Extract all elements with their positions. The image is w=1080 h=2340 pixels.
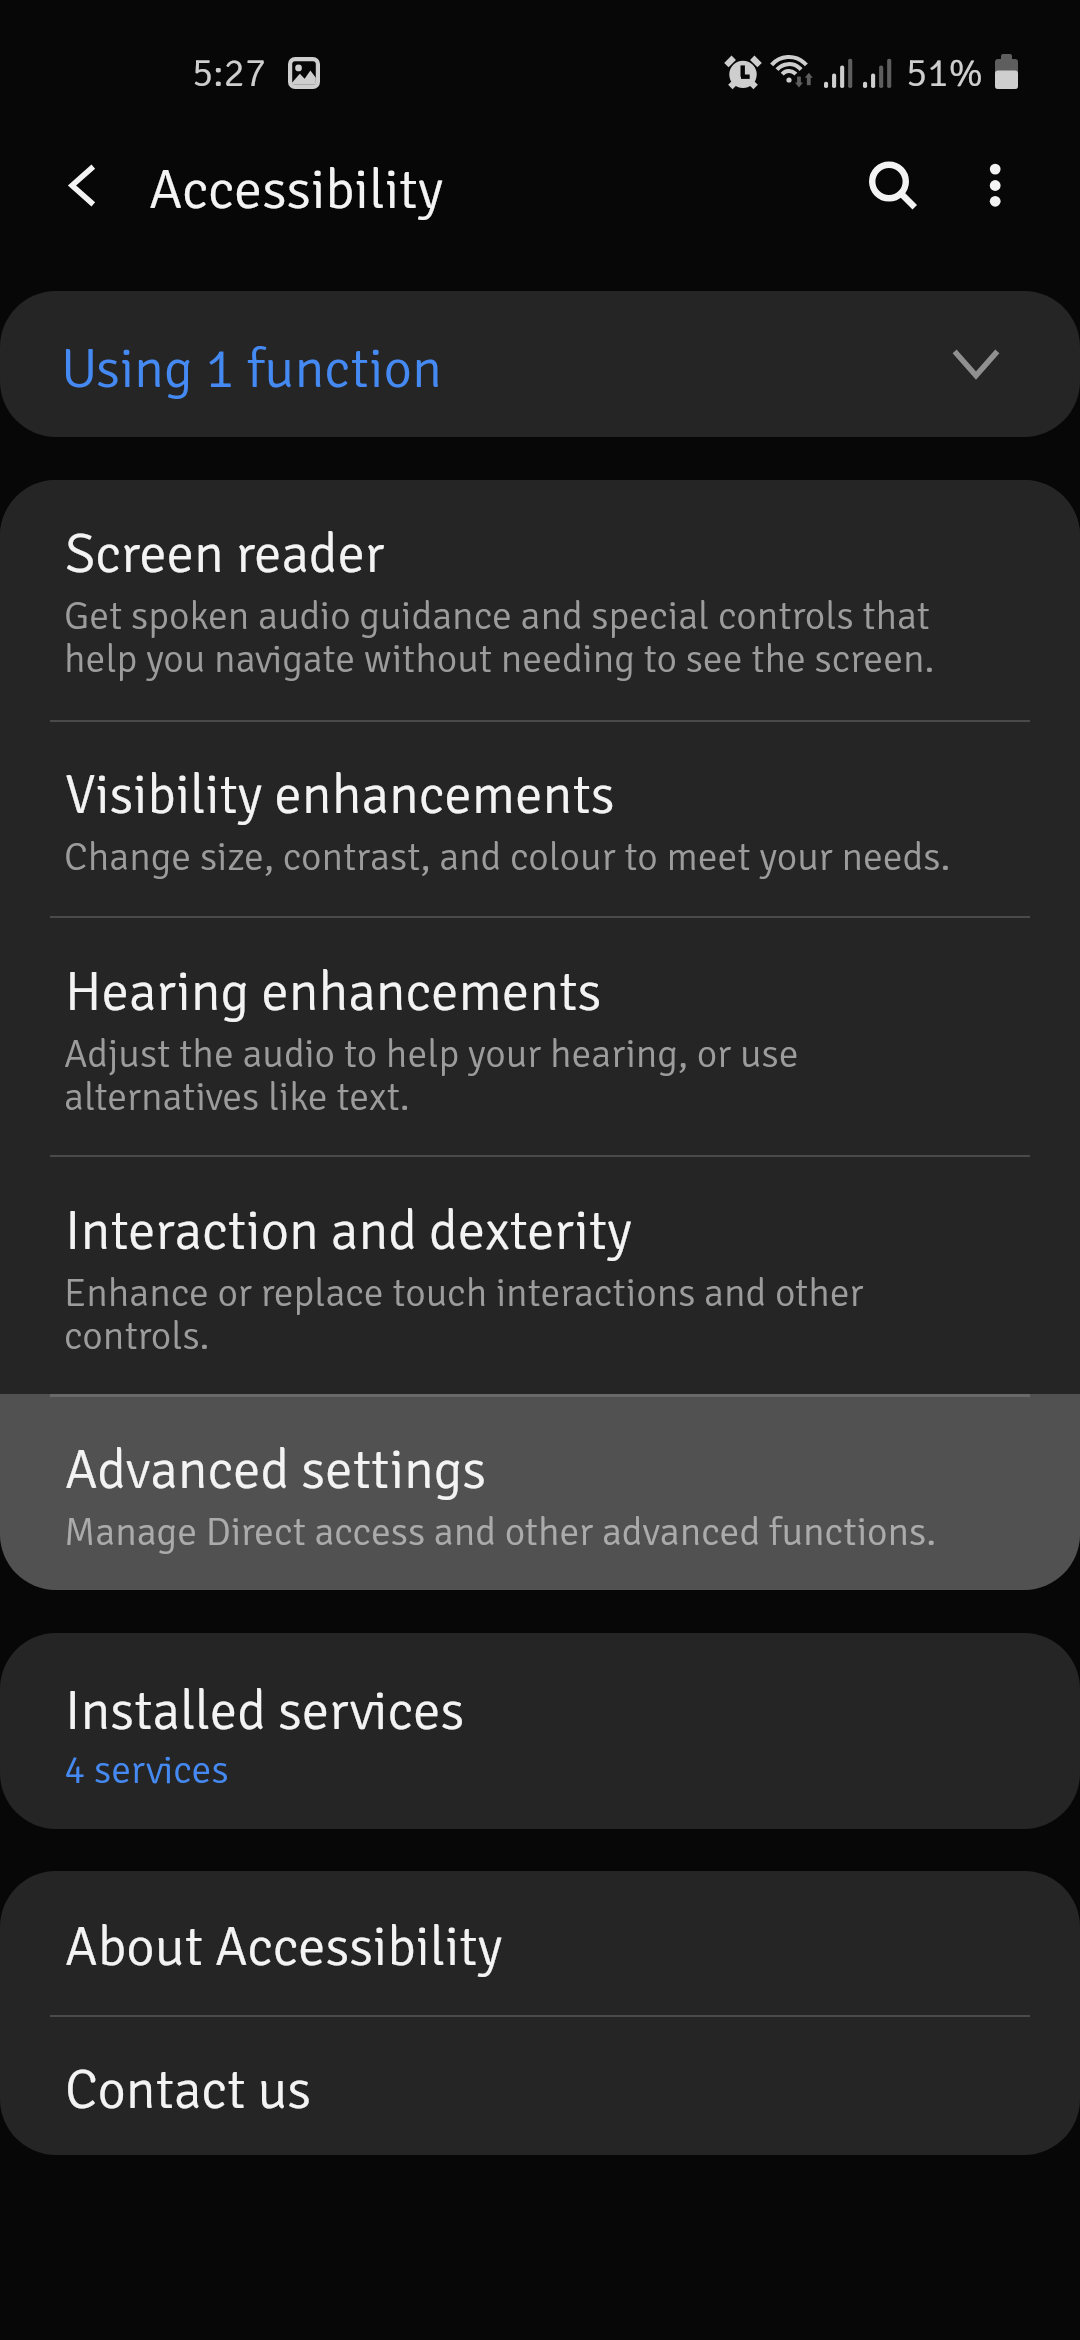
staticText: Enhance or replace touch interactions an… — [64, 1269, 964, 1361]
button[interactable]: Hearing enhancements — [0, 918, 1080, 1157]
staticText: Contact us — [65, 2057, 312, 2124]
button[interactable]: Using 1 function — [0, 291, 1080, 437]
staticText: About Accessibility — [65, 1914, 503, 1981]
staticText: Manage Direct access and other advanced … — [64, 1508, 964, 1557]
staticText: Adjust the audio to help your hearing, o… — [64, 1030, 964, 1122]
button[interactable]: Contact us — [0, 2017, 1080, 2155]
button[interactable]: More options — [942, 132, 1048, 238]
button[interactable]: Visibility enhancements — [0, 722, 1080, 918]
staticText: Advanced settings — [65, 1437, 487, 1504]
staticText: Screen reader — [65, 521, 385, 588]
button[interactable]: Screen reader — [0, 480, 1080, 722]
staticText: 5:27 — [192, 49, 267, 98]
button[interactable]: Search — [836, 132, 942, 238]
staticText: Accessibility — [149, 155, 444, 224]
staticText: 51% — [906, 49, 983, 98]
staticText: 4 services — [64, 1746, 229, 1795]
staticText: Visibility enhancements — [65, 762, 615, 829]
button[interactable]: Navigate up — [29, 132, 135, 238]
button[interactable]: About Accessibility — [0, 1871, 1080, 2017]
staticText: Get spoken audio guidance and special co… — [64, 592, 964, 684]
staticText: Interaction and dexterity — [65, 1198, 632, 1265]
staticText: Installed services — [65, 1678, 465, 1745]
button[interactable]: Interaction and dexterity — [0, 1157, 1080, 1394]
staticText: Hearing enhancements — [65, 959, 602, 1026]
button[interactable]: Installed services — [0, 1633, 1080, 1829]
staticText: Using 1 function — [61, 335, 442, 403]
staticText: Change size, contrast, and colour to mee… — [64, 833, 964, 882]
button[interactable]: Advanced settings — [0, 1394, 1080, 1590]
